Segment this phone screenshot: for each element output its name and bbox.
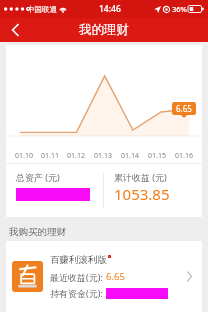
staticText: 01.13 [94,151,112,161]
staticText: 01.10 [15,151,33,161]
staticText: 6.65 [106,270,125,283]
button[interactable]: Back [0,18,30,42]
staticText: 01.15 [148,151,166,161]
button[interactable]: 百赚利滚利版 [6,241,202,312]
staticText: 最近收益(元): [50,271,103,283]
staticText: 01.16 [175,151,193,161]
staticText: 持有资金(元): [50,287,103,299]
staticText: 36% [172,4,187,14]
staticText: 累计收益 (元) [114,171,167,183]
staticText: 01.12 [67,151,85,161]
staticText: 百赚利滚利版 [50,254,107,266]
staticText: 我购买的理财 [9,226,66,238]
staticText: 01.11 [41,151,59,161]
staticText: 1053.85 [114,184,170,204]
staticText: 01.14 [121,151,139,161]
staticText: 6.65 [176,103,192,114]
staticText: 中国联通 [27,5,57,14]
staticText: 我的理财 [79,22,129,38]
staticText: 14:46 [99,3,121,15]
staticText: 总资产 (元) [16,171,60,183]
